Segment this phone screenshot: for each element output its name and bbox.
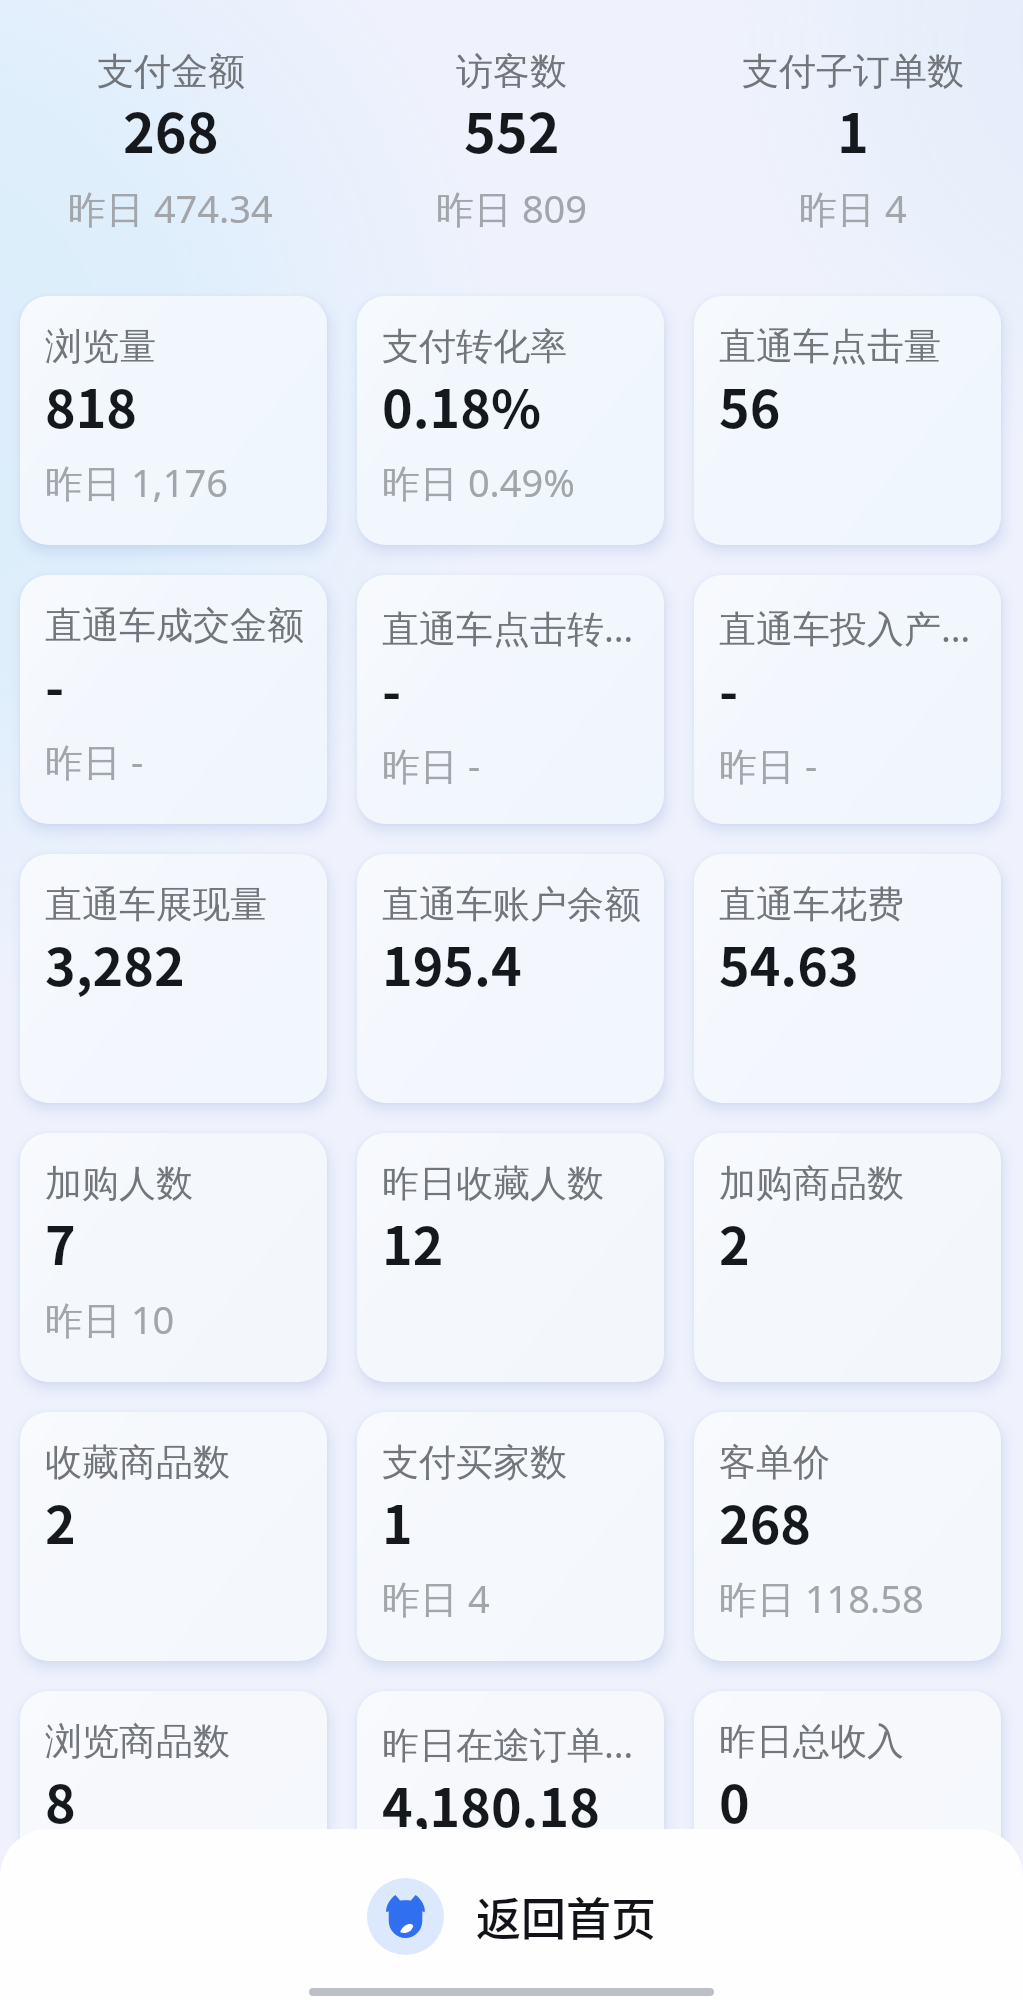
staticText: 昨日 -	[45, 735, 144, 787]
button[interactable]: 访客数	[341, 0, 682, 234]
staticText: 客单价	[719, 1439, 830, 1486]
staticText: 支付买家数	[382, 1439, 567, 1486]
staticText: 昨日 809	[436, 182, 588, 234]
staticText: 8	[45, 1763, 76, 1838]
button[interactable]: 直通车账户余额	[357, 854, 664, 1103]
button[interactable]: Home	[367, 1878, 657, 1955]
staticText: 昨日 -	[382, 739, 481, 791]
button[interactable]: 直通车投入产…	[694, 575, 1001, 824]
button[interactable]: 浏览量	[20, 296, 327, 545]
staticText: 4,180.18	[382, 1767, 600, 1842]
button[interactable]: 加购商品数	[694, 1133, 1001, 1382]
button[interactable]: 支付子订单数	[682, 0, 1023, 234]
staticText: 昨日总收入	[719, 1718, 904, 1765]
staticText: -	[45, 647, 65, 722]
staticText: 1	[382, 1484, 413, 1559]
button[interactable]: 直通车成交金额	[20, 575, 327, 824]
staticText: 54.63	[719, 926, 859, 1001]
staticText: 7	[45, 1205, 76, 1280]
button[interactable]: 支付转化率	[357, 296, 664, 545]
staticText: 浏览量	[45, 323, 156, 370]
button[interactable]: 昨日总收入	[694, 1691, 1001, 1940]
staticText: 2	[45, 1484, 76, 1559]
staticText: 直通车点击转…	[382, 602, 634, 653]
staticText: 3,282	[45, 926, 185, 1001]
staticText: 返回首页	[476, 1884, 657, 1949]
staticText: 56	[719, 368, 781, 443]
other: Home indicator	[309, 1988, 714, 1996]
staticText: -	[719, 651, 739, 726]
button[interactable]: 直通车点击量	[694, 296, 1001, 545]
staticText: 昨日 4	[382, 1572, 490, 1624]
button[interactable]: 昨日收藏人数	[357, 1133, 664, 1382]
staticText: 直通车点击量	[719, 323, 941, 370]
staticText: 直通车投入产…	[719, 602, 971, 653]
other: Home	[367, 1878, 444, 1955]
staticText: 12	[382, 1205, 444, 1280]
button[interactable]: 客单价	[694, 1412, 1001, 1661]
staticText: 加购商品数	[719, 1160, 904, 1207]
staticText: 支付转化率	[382, 323, 567, 370]
staticText: 268	[123, 90, 219, 168]
staticText: 浏览商品数	[45, 1718, 230, 1765]
staticText: 收藏商品数	[45, 1439, 230, 1486]
staticText: 268	[719, 1484, 812, 1559]
staticText: 直通车账户余额	[382, 881, 641, 928]
staticText: 直通车展现量	[45, 881, 267, 928]
button[interactable]: 收藏商品数	[20, 1412, 327, 1661]
button[interactable]: 加购人数	[20, 1133, 327, 1382]
staticText: 昨日 474.34	[68, 182, 273, 234]
staticText: 818	[45, 368, 138, 443]
staticText: 195.4	[382, 926, 522, 1001]
staticText: 2	[719, 1205, 750, 1280]
staticText: 支付子订单数	[742, 48, 964, 95]
staticText: 1	[837, 90, 869, 168]
staticText: 0	[719, 1763, 750, 1838]
button[interactable]: 直通车花费	[694, 854, 1001, 1103]
staticText: 直通车成交金额	[45, 602, 304, 649]
staticText: 552	[464, 90, 560, 168]
staticText: 昨日在途订单…	[382, 1718, 634, 1769]
button[interactable]: 直通车展现量	[20, 854, 327, 1103]
staticText: 昨日 4	[799, 182, 907, 234]
staticText: 支付金额	[97, 48, 245, 95]
staticText: 0.18%	[382, 368, 542, 443]
button[interactable]: 支付金额	[0, 0, 341, 234]
staticText: 直通车花费	[719, 881, 904, 928]
staticText: 昨日 0.49%	[382, 456, 575, 508]
button[interactable]: 直通车点击转…	[357, 575, 664, 824]
staticText: 访客数	[456, 48, 567, 95]
staticText: 昨日 118.58	[719, 1572, 924, 1624]
button[interactable]: 支付买家数	[357, 1412, 664, 1661]
staticText: 昨日 1,176	[45, 456, 229, 508]
button[interactable]: 浏览商品数	[20, 1691, 327, 1940]
button[interactable]: 昨日在途订单…	[357, 1691, 664, 1940]
staticText: 加购人数	[45, 1160, 193, 1207]
staticText: 昨日 -	[719, 739, 818, 791]
staticText: 昨日 10	[45, 1293, 175, 1345]
staticText: 昨日收藏人数	[382, 1160, 604, 1207]
staticText: -	[382, 651, 402, 726]
